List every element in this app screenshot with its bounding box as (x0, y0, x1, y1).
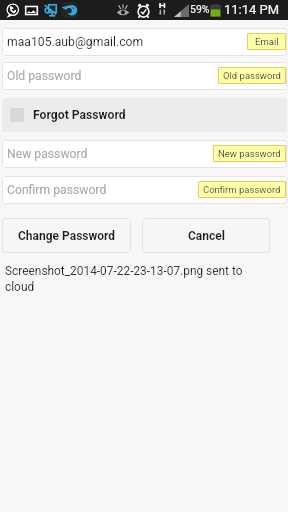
staticText: Cancel (188, 229, 225, 243)
staticText: Confirm password (203, 184, 281, 195)
staticText: 11:14 PM (224, 2, 280, 17)
staticText: Forgot Password (33, 108, 126, 122)
staticText: Email (255, 36, 279, 47)
button[interactable]: New password (2, 140, 287, 168)
staticText: maa105.aub@gmail.com (7, 35, 144, 49)
staticText: Change Password (18, 229, 116, 243)
staticText: Old password (7, 69, 82, 83)
staticText: Screenshot_2014-07-22-23-13-07.png sent … (5, 264, 263, 294)
button[interactable]: Cancel (142, 218, 270, 253)
button[interactable]: maa105.aub@gmail.com (2, 28, 287, 56)
button[interactable]: Old password (2, 62, 287, 90)
button[interactable]: Change Password (2, 218, 131, 253)
button[interactable]: Forgot Password (2, 98, 287, 132)
staticText: 59% (190, 3, 210, 15)
staticText: Old password (223, 70, 281, 81)
staticText: Confirm password (7, 183, 107, 197)
staticText: New password (7, 147, 88, 161)
staticText: New password (218, 148, 281, 159)
button[interactable]: Confirm password (2, 176, 287, 204)
